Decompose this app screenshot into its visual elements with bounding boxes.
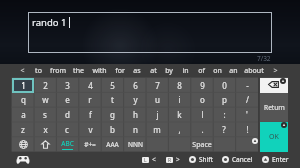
button[interactable]: Shift [189,155,213,164]
button[interactable]: 7 [146,78,168,93]
button[interactable]: Previous suggestions [17,64,27,77]
button[interactable]: t [101,92,123,107]
button[interactable]: NNN [124,137,146,152]
button[interactable]: to [30,64,47,77]
button[interactable]: Return [260,92,288,122]
button[interactable]: about [241,64,267,77]
button[interactable]: an [225,64,241,77]
button[interactable]: , [168,122,190,137]
button[interactable]: l [191,107,213,122]
staticText: a [21,109,26,120]
button[interactable]: q [12,92,34,107]
button[interactable]: o [191,92,213,107]
staticText: z [21,124,25,135]
button[interactable]: ! [236,122,258,137]
button[interactable]: 8 [168,78,190,93]
button[interactable]: h [124,107,146,122]
button[interactable]: j [146,107,168,122]
button[interactable]: e [56,92,78,107]
staticText: 7 [155,80,160,91]
button[interactable]: d [56,107,78,122]
button[interactable]: / [236,92,258,107]
button[interactable]: ? [213,122,235,137]
staticText: 8 [177,80,182,91]
button[interactable]: OK [260,122,288,152]
button[interactable]: a [12,107,34,122]
button[interactable]: v [79,122,101,137]
staticText: - [246,80,249,91]
button[interactable]: g [101,107,123,122]
staticText: #+= [84,140,96,149]
button[interactable]: Shift [34,137,56,152]
button[interactable]: b [101,122,123,137]
button[interactable]: y [124,92,146,107]
button[interactable]: 0 [213,78,235,93]
button[interactable]: rando 1 [28,12,272,53]
button[interactable]: by [161,64,177,77]
button[interactable]: i [168,92,190,107]
button[interactable]: 1 [12,78,34,93]
button[interactable]: Space [146,137,258,152]
button[interactable]: 5 [101,78,123,93]
staticText: for [115,66,125,76]
staticText: Space [192,140,212,150]
button[interactable]: f [79,107,101,122]
button[interactable]: Enter [262,155,289,164]
button[interactable]: for [110,64,129,77]
button[interactable]: with [88,64,110,77]
button[interactable]: : [213,107,235,122]
button[interactable]: L shoulder [142,155,156,164]
button[interactable]: 3 [56,78,78,93]
button[interactable]: 6 [124,78,146,93]
button[interactable]: . [191,122,213,137]
button[interactable]: w [34,92,56,107]
button[interactable]: More suggestions [270,64,280,77]
staticText: on [213,66,222,76]
button[interactable]: c [56,122,78,137]
staticText: the [73,66,84,76]
staticText: : [223,109,226,120]
button[interactable]: - [236,78,258,93]
staticText: g [110,109,115,120]
button[interactable]: of [193,64,209,77]
staticText: Shift [199,155,213,164]
staticText: q [21,94,26,105]
button[interactable]: Controllers [16,155,30,164]
staticText: < [152,155,156,164]
staticText: with [92,66,107,76]
button[interactable]: from [47,64,69,77]
button[interactable]: 4 [79,78,101,93]
staticText: m [153,124,161,135]
button[interactable]: x [34,122,56,137]
button[interactable]: z [12,122,34,137]
button[interactable]: ' [236,107,258,122]
button[interactable]: k [168,107,190,122]
button[interactable]: 9 [191,78,213,93]
button[interactable]: ABC [56,137,78,152]
staticText: L [144,157,147,163]
staticText: p [222,94,227,105]
button[interactable]: 2 [34,78,56,93]
staticText: v [88,124,93,135]
button[interactable]: m [146,122,168,137]
button[interactable]: Change language [12,137,34,152]
button[interactable]: the [69,64,88,77]
button[interactable]: u [146,92,168,107]
button[interactable]: Backspace [260,78,288,93]
button[interactable]: Cancel [222,155,253,164]
button[interactable]: on [209,64,225,77]
button[interactable]: as [129,64,145,77]
button[interactable]: #+= [79,137,101,152]
button[interactable]: at [145,64,161,77]
staticText: e [65,94,70,105]
button[interactable]: R shoulder [166,155,180,164]
staticText: o [200,94,205,105]
button[interactable]: n [124,122,146,137]
button[interactable]: AAA [101,137,123,152]
staticText: ? [222,124,226,135]
button[interactable]: r [79,92,101,107]
staticText: 0 [222,80,227,91]
button[interactable]: in [177,64,193,77]
button[interactable]: p [213,92,235,107]
button[interactable]: s [34,107,56,122]
